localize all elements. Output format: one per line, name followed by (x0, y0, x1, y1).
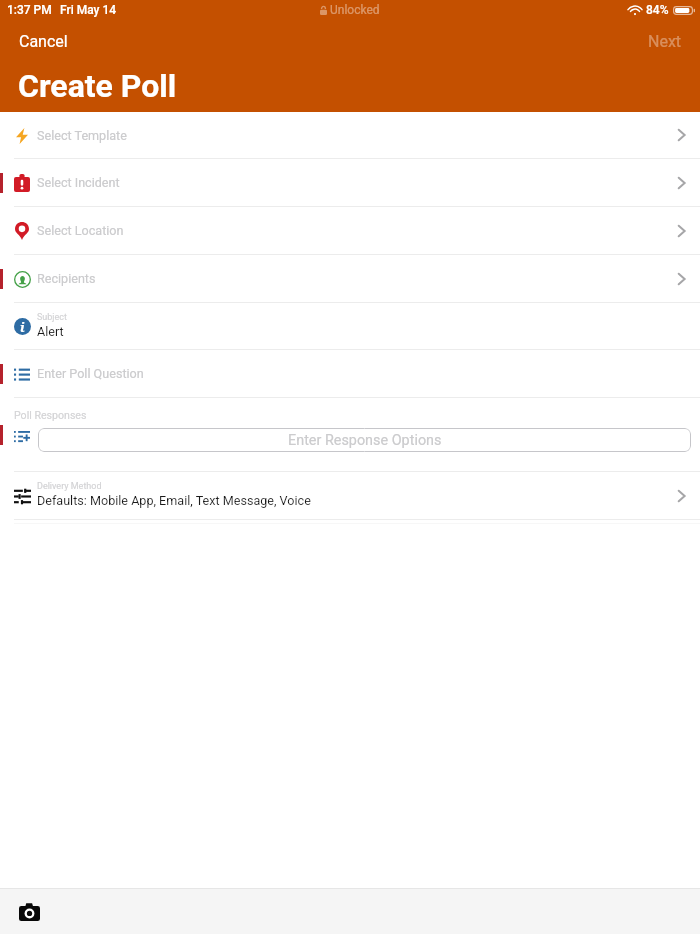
staticText: Alert (37, 324, 64, 339)
staticText: Enter Poll Question (37, 366, 144, 381)
button[interactable]: Next (638, 25, 692, 58)
staticText: Defaults: Mobile App, Email, Text Messag… (37, 493, 311, 508)
staticText: 1:37 PM (7, 3, 52, 17)
staticText: Subject (37, 312, 67, 323)
button[interactable]: i (0, 303, 700, 349)
button[interactable]: Select Template (0, 112, 700, 158)
button[interactable]: Delivery Method (0, 472, 700, 519)
staticText: Fri May 14 (60, 3, 117, 17)
button[interactable]: Select Location (0, 207, 700, 254)
staticText: Select Template (37, 128, 127, 143)
button[interactable]: Camera (12, 895, 46, 929)
button[interactable]: Cancel (8, 25, 79, 58)
staticText: Next (648, 32, 682, 51)
staticText: Recipients (37, 271, 96, 286)
staticText: 84% (646, 3, 669, 17)
staticText: Create Poll (18, 67, 177, 105)
button[interactable]: Recipients (0, 255, 700, 302)
staticText: i (20, 318, 25, 335)
button[interactable]: Select Incident (0, 159, 700, 206)
button[interactable]: Enter Poll Question (0, 350, 700, 397)
button[interactable]: Enter Response Options (38, 428, 691, 452)
staticText: Enter Response Options (288, 432, 442, 449)
staticText: Select Location (37, 223, 124, 238)
staticText: Delivery Method (37, 481, 102, 492)
staticText: Poll Responses (14, 409, 87, 421)
staticText: Select Incident (37, 175, 120, 190)
staticText: Unlocked (330, 3, 380, 17)
staticText: Cancel (19, 32, 68, 51)
